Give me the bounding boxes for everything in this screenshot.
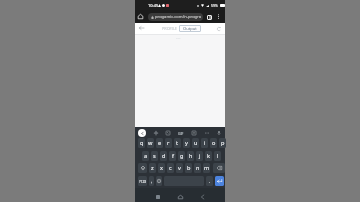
button[interactable]: Clipboard: [190, 129, 197, 136]
button[interactable]: s: [151, 151, 158, 161]
button[interactable]: PROFILE: [160, 23, 178, 34]
staticText: a: [144, 152, 148, 160]
button[interactable]: j: [196, 151, 203, 161]
button[interactable]: .: [206, 176, 213, 186]
staticText: PROFILE: [162, 26, 177, 31]
button[interactable]: ,: [149, 176, 154, 186]
button[interactable]: e: [156, 138, 163, 148]
button[interactable]: g: [178, 151, 185, 161]
staticText: i: [204, 139, 206, 147]
button[interactable]: l: [214, 151, 221, 161]
button[interactable]: Voice input: [215, 129, 222, 136]
staticText: w: [148, 139, 153, 147]
staticText: ,: [151, 178, 153, 184]
button[interactable]: progamic.com/n-progra: [148, 13, 203, 21]
button[interactable]: Backspace: [213, 163, 225, 173]
button[interactable]: Expand toolbar: [138, 129, 146, 137]
staticText: r: [167, 139, 170, 147]
button[interactable]: Recents: [152, 191, 163, 202]
staticText: progamic.com/n-progra: [155, 14, 202, 20]
button[interactable]: Home: [136, 12, 145, 21]
button[interactable]: Shift: [138, 163, 147, 173]
button[interactable]: a: [142, 151, 149, 161]
button[interactable]: n: [194, 163, 201, 173]
button[interactable]: b: [185, 163, 192, 173]
button[interactable]: c: [167, 163, 174, 173]
button[interactable]: Back: [136, 23, 146, 33]
button[interactable]: ?123: [138, 176, 147, 186]
button[interactable]: t: [174, 138, 181, 148]
button[interactable]: More tools: [203, 129, 210, 136]
staticText: u: [194, 139, 198, 147]
staticText: d: [162, 152, 166, 160]
staticText: y: [185, 139, 188, 147]
staticText: ?123: [139, 179, 147, 184]
button[interactable]: w: [147, 138, 154, 148]
button[interactable]: x: [158, 163, 165, 173]
staticText: f: [172, 152, 174, 160]
button[interactable]: Emoji: [156, 176, 162, 186]
staticText: s: [153, 152, 156, 160]
staticText: o: [212, 139, 216, 147]
staticText: q: [140, 139, 144, 147]
staticText: GIF: [178, 131, 184, 136]
staticText: 59%: [211, 3, 218, 8]
button[interactable]: Refresh: [214, 24, 224, 34]
staticText: z: [151, 164, 154, 172]
button[interactable]: Back: [197, 191, 208, 202]
staticText: k: [207, 152, 210, 160]
button[interactable]: More options: [215, 13, 222, 20]
button[interactable]: GIF: [177, 129, 185, 137]
staticText: t: [176, 139, 179, 147]
staticText: e: [158, 139, 162, 147]
button[interactable]: y: [183, 138, 190, 148]
button[interactable]: h: [187, 151, 194, 161]
button[interactable]: o: [210, 138, 217, 148]
staticText: j: [199, 152, 201, 160]
staticText: n: [196, 164, 200, 172]
button[interactable]: f: [169, 151, 176, 161]
staticText: c: [169, 164, 172, 172]
button[interactable]: d: [160, 151, 167, 161]
button[interactable]: z: [149, 163, 156, 173]
button[interactable]: Stickers: [164, 129, 171, 136]
button[interactable]: Output: [179, 25, 201, 32]
staticText: g: [180, 152, 184, 160]
button[interactable]: Switch tabs: [205, 13, 213, 21]
button[interactable]: q: [138, 138, 145, 148]
staticText: 10:45: [148, 3, 159, 8]
staticText: v: [178, 164, 181, 172]
button[interactable]: Home: [175, 191, 186, 202]
staticText: •••: [176, 36, 181, 41]
staticText: 3: [209, 16, 211, 20]
button[interactable]: m: [203, 163, 210, 173]
staticText: h: [189, 152, 193, 160]
button[interactable]: Enter: [215, 176, 224, 186]
staticText: p: [221, 139, 225, 147]
button[interactable]: v: [176, 163, 183, 173]
staticText: l: [217, 152, 219, 160]
staticText: Output: [183, 26, 197, 32]
button[interactable]: p: [219, 138, 226, 148]
button[interactable]: r: [165, 138, 172, 148]
staticText: b: [187, 164, 191, 172]
button[interactable]: i: [201, 138, 208, 148]
button[interactable]: k: [205, 151, 212, 161]
button[interactable]: u: [192, 138, 199, 148]
staticText: m: [204, 164, 210, 172]
staticText: x: [160, 164, 163, 172]
button[interactable]: Google Lens: [152, 129, 159, 136]
staticText: .: [209, 178, 211, 184]
